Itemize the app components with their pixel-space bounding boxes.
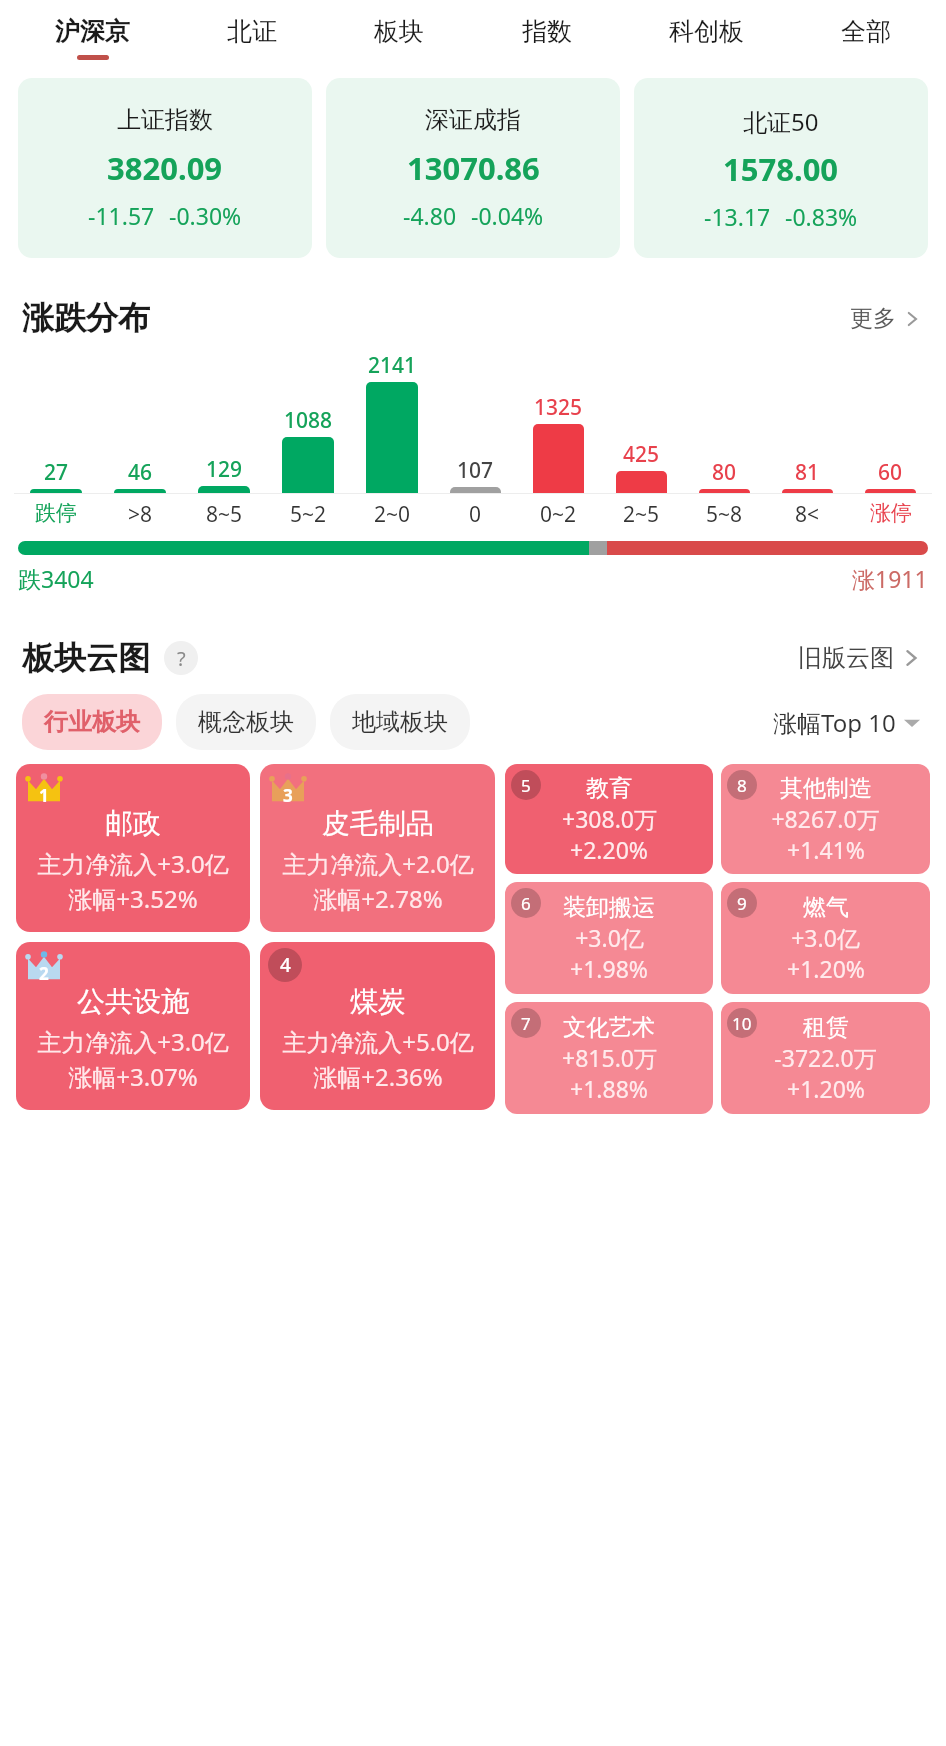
staticText: 公共设施 <box>77 984 189 1019</box>
staticText: +1.88% <box>570 1073 648 1104</box>
button[interactable]: 深证成指 <box>326 78 620 258</box>
staticText: 涨跌分布 <box>22 298 150 338</box>
button[interactable]: 北证50 <box>634 78 928 258</box>
button[interactable]: 81 <box>766 458 849 493</box>
staticText: 129 <box>206 455 243 484</box>
button[interactable]: 行业板块 <box>22 694 162 750</box>
button[interactable]: 60 <box>849 458 932 493</box>
staticText: 燃气 <box>803 893 849 922</box>
staticText: 7 <box>521 1012 531 1035</box>
button[interactable]: 3 <box>260 764 495 932</box>
staticText: 5~2 <box>290 500 327 529</box>
staticText: 主力净流入+5.0亿 <box>282 1025 474 1058</box>
staticText: 其他制造 <box>780 774 872 803</box>
staticText: 8 <box>737 774 747 797</box>
staticText: 涨幅+2.78% <box>313 882 443 915</box>
staticText: 3820.09 <box>107 147 223 189</box>
button[interactable]: 指数 <box>518 14 576 62</box>
button[interactable]: 上证指数 <box>18 78 312 258</box>
staticText: -0.83% <box>785 201 858 232</box>
button[interactable]: 地域板块 <box>330 694 470 750</box>
staticText: +8267.0万 <box>771 803 880 834</box>
button[interactable]: 旧版云图 <box>794 639 924 677</box>
button[interactable]: 425 <box>600 440 683 493</box>
staticText: -4.80 <box>403 200 457 231</box>
button[interactable]: 2 <box>16 942 250 1110</box>
staticText: 1325 <box>534 393 583 422</box>
button[interactable]: 107 <box>434 456 517 493</box>
staticText: +2.20% <box>570 834 648 865</box>
button[interactable]: 板块 <box>370 14 428 62</box>
staticText: 指数 <box>522 16 572 47</box>
button[interactable]: 帮助 <box>164 641 198 675</box>
staticText: 425 <box>623 440 660 469</box>
button[interactable]: 46 <box>98 458 182 493</box>
staticText: ? <box>177 645 186 672</box>
staticText: 北证 <box>227 16 277 47</box>
button[interactable]: 科创板 <box>665 14 748 62</box>
button[interactable]: 27 <box>14 458 98 493</box>
staticText: 81 <box>795 458 820 487</box>
button[interactable]: 6 <box>505 882 713 994</box>
staticText: +1.20% <box>787 953 865 984</box>
staticText: 科创板 <box>669 16 744 47</box>
staticText: 2141 <box>368 351 417 380</box>
staticText: 6 <box>521 892 531 915</box>
staticText: 更多 <box>850 304 896 333</box>
staticText: 煤炭 <box>350 984 406 1019</box>
staticText: 1088 <box>284 406 333 435</box>
staticText: 装卸搬运 <box>563 893 655 922</box>
staticText: +308.0万 <box>562 803 657 834</box>
staticText: 皮毛制品 <box>322 806 434 841</box>
button[interactable]: 5 <box>505 764 713 874</box>
staticText: 全部 <box>841 16 891 47</box>
staticText: 涨幅Top 10 <box>773 706 896 739</box>
staticText: 涨幅+3.52% <box>68 882 198 915</box>
staticText: 13070.86 <box>407 147 540 189</box>
button[interactable]: 129 <box>182 455 266 493</box>
staticText: 跌3404 <box>18 563 94 594</box>
staticText: +815.0万 <box>562 1042 657 1073</box>
button[interactable]: 2141 <box>350 351 434 493</box>
staticText: 主力净流入+2.0亿 <box>282 847 474 880</box>
staticText: >8 <box>128 500 153 529</box>
staticText: 8~5 <box>206 500 243 529</box>
button[interactable]: 1088 <box>266 406 350 493</box>
staticText: 1 <box>39 784 49 807</box>
staticText: 北证50 <box>743 105 819 138</box>
button[interactable]: 北证 <box>223 14 281 62</box>
button[interactable]: 4 <box>260 942 495 1110</box>
staticText: +1.41% <box>787 834 865 865</box>
button[interactable]: 1 <box>16 764 250 932</box>
staticText: -0.30% <box>169 200 242 231</box>
staticText: 地域板块 <box>352 707 448 737</box>
button[interactable]: 10 <box>721 1002 930 1114</box>
button[interactable]: 8 <box>721 764 930 874</box>
button[interactable]: 概念板块 <box>176 694 316 750</box>
button[interactable]: 7 <box>505 1002 713 1114</box>
button[interactable]: 9 <box>721 882 930 994</box>
staticText: -11.57 <box>88 200 155 231</box>
staticText: 涨幅+3.07% <box>68 1060 198 1093</box>
staticText: 涨幅+2.36% <box>313 1060 443 1093</box>
button[interactable]: 全部 <box>837 14 895 62</box>
button[interactable]: 1325 <box>517 393 600 493</box>
button[interactable]: 80 <box>683 458 766 493</box>
button[interactable]: 沪深京 <box>51 14 134 62</box>
staticText: 2~0 <box>374 500 411 529</box>
staticText: 邮政 <box>105 806 161 841</box>
button[interactable]: 涨幅Top 10 <box>769 702 924 743</box>
staticText: +3.0亿 <box>575 922 644 953</box>
staticText: 上证指数 <box>117 105 213 135</box>
staticText: 涨1911 <box>852 563 928 594</box>
staticText: 租赁 <box>803 1013 849 1042</box>
staticText: 5 <box>521 774 531 797</box>
staticText: 文化艺术 <box>563 1013 655 1042</box>
staticText: 板块 <box>374 16 424 47</box>
button[interactable]: 更多 <box>846 300 924 337</box>
staticText: 教育 <box>586 774 632 803</box>
staticText: +1.20% <box>787 1073 865 1104</box>
staticText: 8< <box>795 500 820 529</box>
staticText: 行业板块 <box>44 707 140 737</box>
staticText: 0 <box>469 500 482 529</box>
